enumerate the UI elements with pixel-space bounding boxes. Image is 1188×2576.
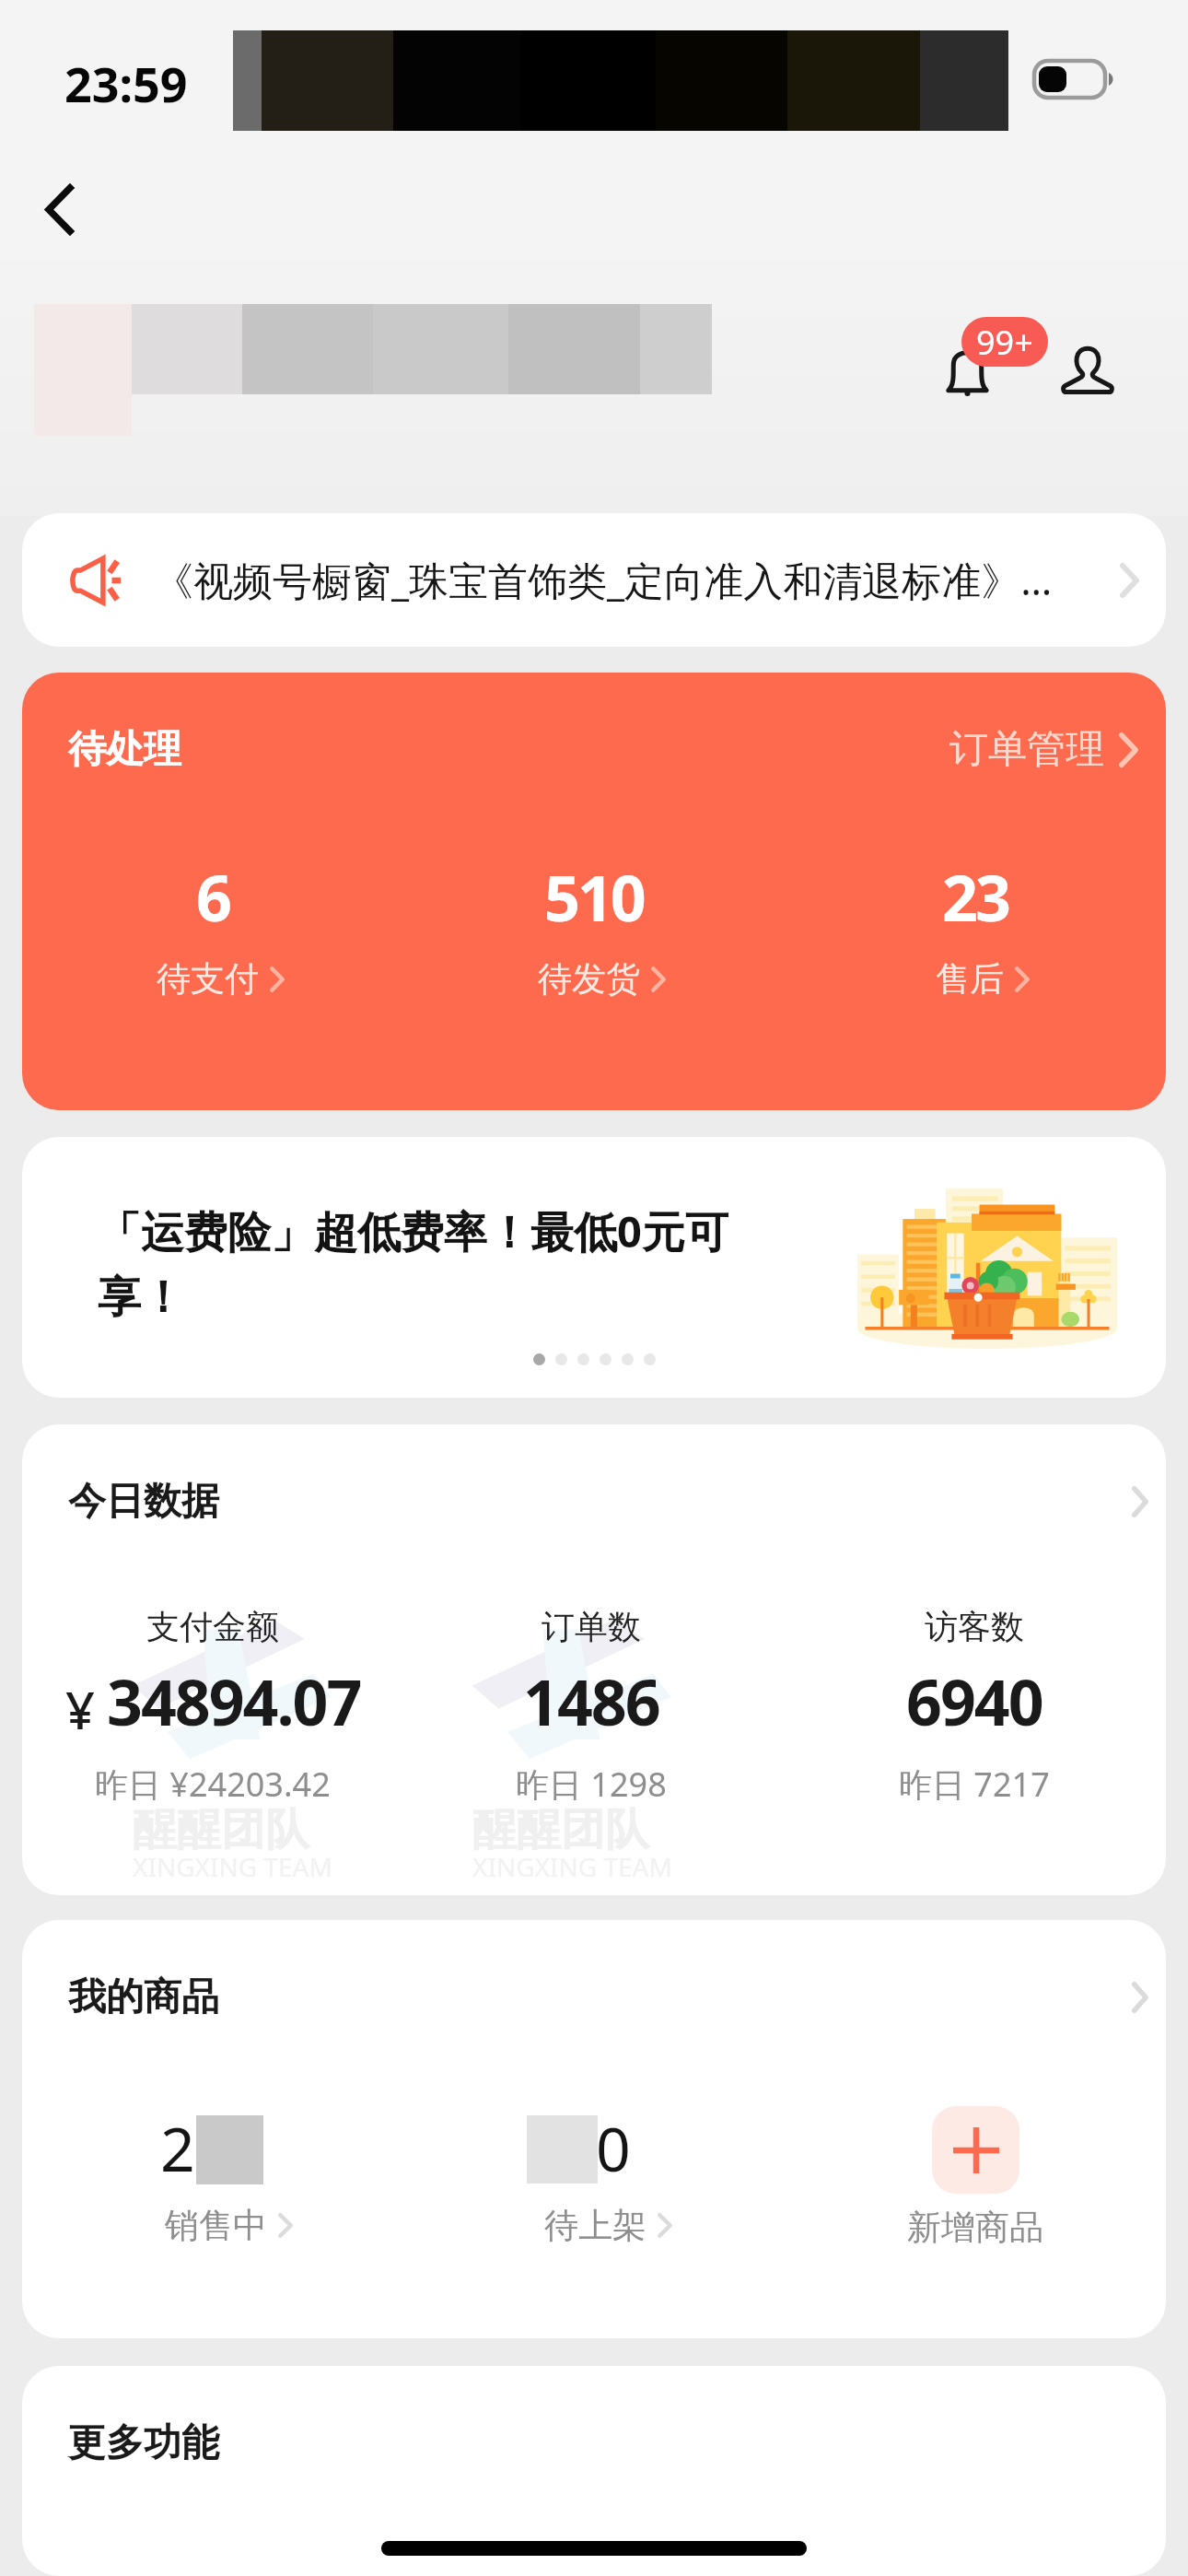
staticText: 23:59 [64,51,188,116]
staticText: 23 [942,854,1008,940]
staticText: 更多功能 [68,2419,219,2467]
staticText: XINGXING TEAM [472,1849,672,1884]
staticText: 今日数据 [68,1478,219,1526]
staticText: 《视频号橱窗_珠宝首饰类_定向准入和清退标准》… [154,553,1107,607]
staticText: 34894.07 [107,1658,361,1744]
button[interactable]: 新增商品 [883,2106,1067,2249]
staticText: 订单数 [542,1606,641,1647]
button[interactable]: 今日数据 [22,1424,1166,1526]
staticText: XINGXING TEAM [133,1849,332,1884]
staticText: 昨日 7217 [899,1762,1050,1807]
button[interactable]: 23 [785,854,1166,1001]
button[interactable]: 我的商品 [22,1920,1166,2021]
button[interactable]: Account [1037,321,1138,422]
staticText: 昨日 ¥24203.42 [95,1762,331,1807]
button[interactable]: Notifications [912,321,1022,422]
staticText: 待支付 [157,957,259,1001]
staticText: 待发货 [538,957,640,1001]
button[interactable]: 510 [403,854,785,1001]
staticText: 销售中 [165,2204,267,2247]
button[interactable]: 销售中 [165,2204,293,2247]
staticText: 6 [196,854,229,940]
staticText: ¥ [65,1674,96,1744]
button[interactable]: 《视频号橱窗_珠宝首饰类_定向准入和清退标准》… [22,513,1166,647]
staticText: 「运费险」超低费率！最低0元可享！ [98,1201,747,1325]
staticText: 我的商品 [68,1973,219,2021]
staticText: 支付金额 [146,1606,279,1647]
button[interactable]: 访客数 [790,1606,1159,1807]
staticText: 待上架 [544,2204,646,2247]
button[interactable]: 支付金额 [29,1606,397,1807]
staticText: 新增商品 [907,2206,1043,2249]
staticText: 订单管理 [949,725,1104,774]
button[interactable]: 订单管理 [944,720,1144,779]
staticText: 1486 [523,1658,659,1744]
button[interactable]: Back [13,158,106,261]
staticText: 访客数 [925,1606,1024,1647]
button[interactable]: 待上架 [544,2204,672,2247]
staticText: 售后 [936,957,1004,1001]
staticText: 510 [544,854,644,940]
button[interactable]: 订单数 [407,1606,775,1807]
staticText: 醒醒团队 [133,1802,309,1857]
staticText: 待处理 [68,726,181,774]
staticText: 醒醒团队 [472,1802,649,1857]
staticText: 昨日 1298 [516,1762,667,1807]
staticText: 99+ [976,320,1033,365]
staticText: 0 [596,2106,631,2189]
button[interactable]: 6 [22,854,403,1001]
staticText: 2 [160,2106,195,2189]
staticText: 6940 [906,1658,1042,1744]
